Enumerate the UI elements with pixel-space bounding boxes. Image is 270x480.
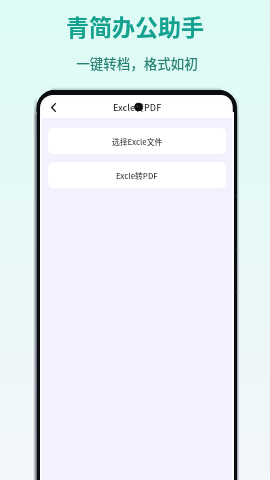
staticText: Excle转PDF — [116, 170, 158, 181]
staticText: 青简办公助手 — [66, 9, 204, 42]
button[interactable]: Back — [46, 100, 60, 114]
staticText: 选择Excle文件 — [112, 136, 163, 147]
staticText: 一键转档，格式如初 — [76, 53, 198, 73]
button[interactable]: 选择Excle文件 — [48, 128, 226, 154]
button[interactable]: Excle转PDF — [48, 162, 226, 188]
staticText: Excle转PDF — [113, 101, 162, 114]
